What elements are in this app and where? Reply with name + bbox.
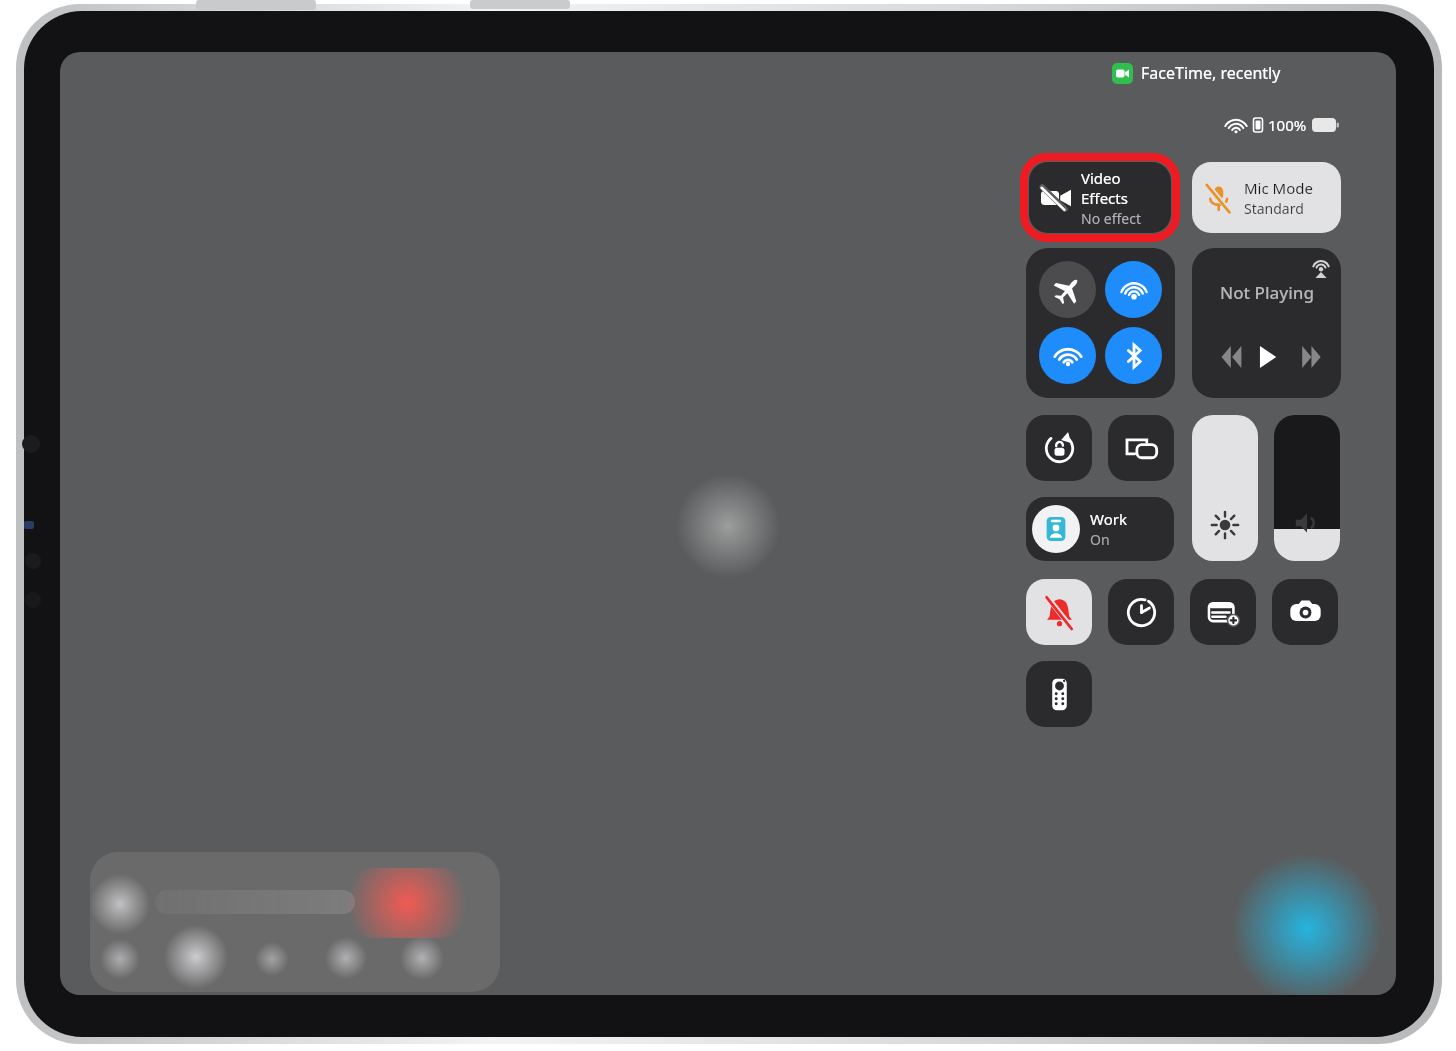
staticText: Not Playing (1220, 281, 1314, 304)
staticText: 100% (1268, 115, 1307, 135)
button[interactable]: Fast forward (1298, 344, 1324, 370)
button[interactable]: Work (1026, 497, 1174, 561)
button[interactable]: Rotation Lock (1026, 415, 1092, 481)
button[interactable]: FaceTime, recently (1108, 60, 1285, 86)
staticText: Standard (1244, 199, 1304, 218)
button[interactable]: AirPlay (1192, 248, 1341, 398)
staticText: No effect (1081, 209, 1141, 228)
button[interactable]: Rewind (1209, 344, 1235, 370)
button[interactable]: Apple TV Remote (1026, 661, 1092, 727)
button[interactable]: Mic Mode (1192, 162, 1341, 233)
staticText: Video Effects (1081, 168, 1171, 208)
staticText: Work (1090, 509, 1127, 529)
button[interactable] (1039, 261, 1096, 318)
button[interactable] (1105, 261, 1162, 318)
button[interactable]: Screen Mirroring (1108, 415, 1174, 481)
staticText: Mic Mode (1244, 178, 1313, 198)
button[interactable]: Volume (1274, 415, 1340, 561)
button[interactable] (1039, 327, 1096, 384)
button[interactable]: Camera (1272, 579, 1338, 645)
button[interactable]: Silent Mode (1026, 579, 1092, 645)
button[interactable]: Video Effects (1029, 162, 1171, 233)
button[interactable]: Timer (1108, 579, 1174, 645)
button[interactable] (1105, 327, 1162, 384)
button[interactable]: AirPlay (1311, 258, 1331, 278)
staticText: On (1090, 530, 1110, 549)
staticText: FaceTime, recently (1141, 62, 1281, 84)
button[interactable]: Play (1252, 342, 1282, 372)
button[interactable]: Quick Note (1190, 579, 1256, 645)
button[interactable]: Brightness (1192, 415, 1258, 561)
